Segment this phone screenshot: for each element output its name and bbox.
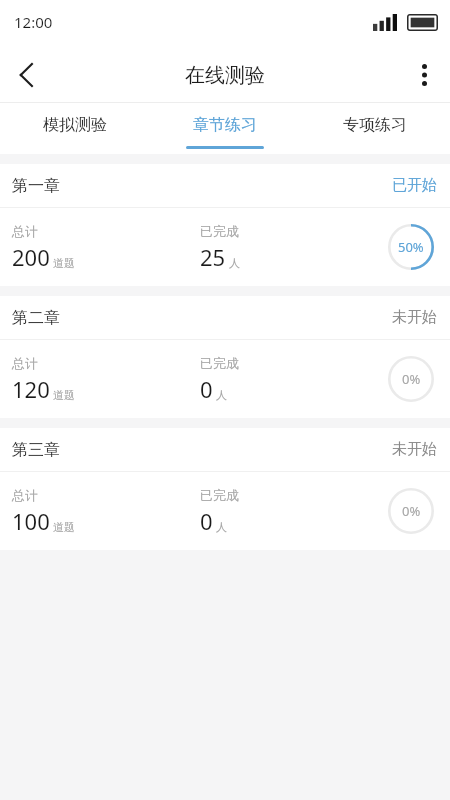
button[interactable]: 第二章 [0,296,450,418]
staticText: 总计 [12,223,38,239]
button[interactable]: Back [0,49,52,101]
button[interactable]: 模拟测验 [0,103,150,154]
button[interactable]: 专项练习 [300,103,450,154]
staticText: 未开始 [392,308,437,327]
button[interactable]: 第一章 [0,164,450,286]
staticText: 第一章 [12,176,60,196]
staticText: 人 [216,388,227,402]
staticText: 人 [229,256,240,270]
button[interactable]: 章节练习 [150,103,300,154]
staticText: 已完成 [200,355,239,371]
staticText: 第三章 [12,440,60,460]
staticText: 200 [12,242,50,272]
staticText: 未开始 [392,440,437,459]
button[interactable]: More options [398,49,450,101]
staticText: 已开始 [392,176,437,195]
staticText: 专项练习 [343,115,407,135]
button[interactable]: 第三章 [0,428,450,550]
staticText: 道题 [53,388,75,402]
staticText: 50% [398,238,424,256]
staticText: 0 [200,506,213,536]
staticText: 章节练习 [193,115,257,135]
staticText: 在线测验 [185,63,265,88]
staticText: 模拟测验 [43,115,107,135]
staticText: 100 [12,506,50,536]
staticText: 12:00 [14,12,53,32]
staticText: 25 [200,242,226,272]
staticText: 总计 [12,355,38,371]
staticText: 已完成 [200,487,239,503]
staticText: 0% [402,502,421,520]
staticText: 道题 [53,256,75,270]
staticText: 总计 [12,487,38,503]
staticText: 0 [200,374,213,404]
staticText: 120 [12,374,50,404]
staticText: 已完成 [200,223,239,239]
staticText: 道题 [53,520,75,534]
staticText: 第二章 [12,308,60,328]
staticText: 人 [216,520,227,534]
staticText: 0% [402,370,421,388]
